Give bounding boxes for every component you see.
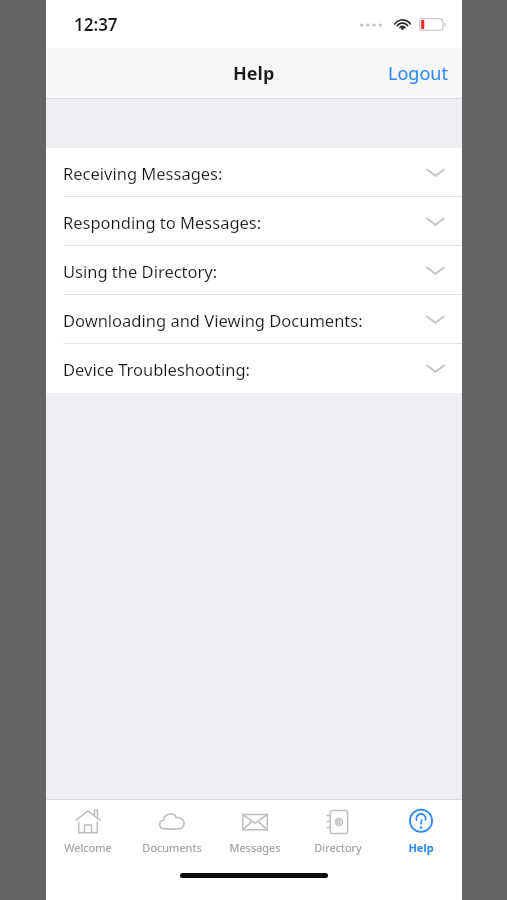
- button[interactable]: Using the Directory:: [46, 246, 462, 295]
- button[interactable]: Device Troubleshooting:: [46, 344, 462, 393]
- staticText: Downloading and Viewing Documents:: [63, 309, 363, 331]
- button[interactable]: Welcome: [46, 800, 130, 864]
- staticText: Receiving Messages:: [63, 162, 223, 184]
- staticText: Help: [408, 840, 434, 855]
- staticText: 12:37: [74, 13, 118, 36]
- button[interactable]: Documents: [130, 800, 213, 864]
- staticText: Help: [233, 61, 275, 86]
- button[interactable]: Responding to Messages:: [46, 197, 462, 246]
- staticText: Directory: [314, 840, 362, 855]
- button[interactable]: Directory: [296, 800, 379, 864]
- staticText: Messages: [229, 840, 281, 855]
- staticText: Device Troubleshooting:: [63, 358, 250, 380]
- staticText: Responding to Messages:: [63, 211, 262, 233]
- button[interactable]: Help: [379, 800, 462, 864]
- button[interactable]: Logout: [374, 53, 462, 94]
- staticText: Using the Directory:: [63, 260, 218, 282]
- button[interactable]: Downloading and Viewing Documents:: [46, 295, 462, 344]
- staticText: Logout: [388, 61, 448, 86]
- staticText: Welcome: [64, 840, 112, 855]
- button[interactable]: Messages: [213, 800, 296, 864]
- staticText: Documents: [142, 840, 202, 855]
- button[interactable]: Receiving Messages:: [46, 148, 462, 197]
